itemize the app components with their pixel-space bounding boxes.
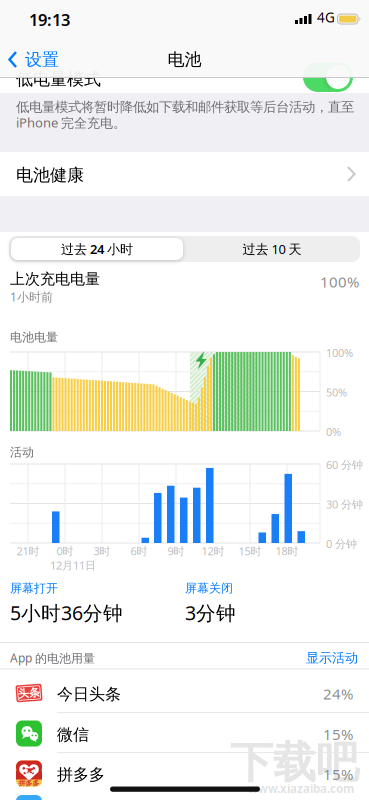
staticText: 头条 [18, 686, 40, 700]
staticText: 低电量模式 [16, 69, 101, 89]
staticText: 12月11日 [50, 558, 96, 572]
staticText: 15% [323, 724, 353, 744]
staticText: 24% [323, 684, 353, 703]
button[interactable]: 过去 10 天 [187, 236, 357, 262]
staticText: 9时 [167, 544, 184, 558]
staticText: 3分钟 [185, 600, 236, 625]
staticText: 显示活动 [306, 650, 358, 666]
staticText: 18时 [275, 544, 298, 558]
button[interactable]: 微信 [0, 712, 369, 752]
staticText: 0% [326, 424, 341, 439]
staticText: 0 分钟 [326, 536, 357, 551]
staticText: 15时 [238, 544, 261, 558]
staticText: 活动 [10, 445, 34, 459]
button[interactable]: 过去 24 小时 [11, 238, 183, 260]
staticText: 屏幕打开 [10, 581, 58, 595]
staticText: 30 分钟 [326, 497, 363, 511]
staticText: 1小时前 [10, 289, 53, 305]
staticText: 上次充电电量 [10, 270, 100, 288]
staticText: iPhone 完全充电。 [16, 114, 126, 131]
staticText: 拼多多 [18, 779, 39, 787]
staticText: 15% [323, 764, 353, 784]
staticText: 拼多多 [57, 765, 105, 784]
staticText: 100% [326, 345, 353, 360]
button[interactable]: 显示活动 [306, 650, 358, 666]
staticText: 过去 10 天 [242, 241, 301, 257]
staticText: 电池健康 [16, 165, 84, 185]
staticText: 0时 [56, 544, 73, 558]
staticText: 设置 [25, 49, 59, 70]
staticText: 4G [317, 8, 335, 26]
staticText: 下载吧 [230, 737, 359, 789]
button[interactable]: 返回设置 [8, 49, 59, 70]
staticText: 微信 [57, 725, 89, 744]
staticText: 12时 [201, 544, 224, 558]
staticText: 过去 24 小时 [61, 241, 133, 257]
staticText: App 的电池用量 [10, 650, 95, 666]
staticText: 电池电量 [10, 330, 58, 344]
button[interactable]: 头条 [0, 672, 369, 712]
staticText: 6时 [130, 544, 147, 558]
staticText: 今日头条 [57, 684, 121, 704]
staticText: 50% [326, 385, 347, 399]
staticText: 低电量模式将暂时降低如下载和邮件获取等后台活动，直至 [16, 99, 354, 115]
button[interactable]: 低电量模式 [303, 62, 353, 92]
staticText: www.xiazaiba.com [248, 781, 354, 796]
staticText: 电池 [167, 49, 201, 70]
button[interactable]: 拼多多 [0, 752, 369, 792]
staticText: 3时 [93, 544, 110, 558]
staticText: 5小时36分钟 [10, 600, 123, 625]
staticText: 屏幕关闭 [185, 581, 233, 595]
button[interactable]: 电池健康 [0, 152, 369, 196]
staticText: 100% [320, 272, 359, 291]
staticText: 21时 [16, 544, 39, 558]
staticText: 60 分钟 [326, 457, 363, 472]
staticText: 19:13 [29, 9, 70, 30]
